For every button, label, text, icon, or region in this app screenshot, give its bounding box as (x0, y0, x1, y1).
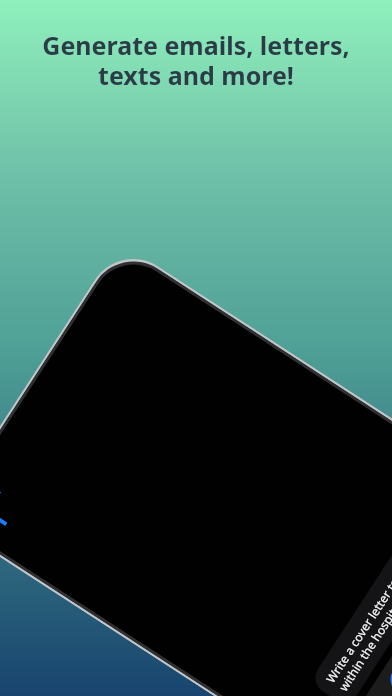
staticText: Generate emails, letters, texts and more… (42, 28, 350, 93)
button[interactable]: Write a cover letter to the employer wit… (322, 491, 392, 694)
button[interactable]: Audio message (384, 657, 392, 696)
staticText: Write a cover letter to the employer wit… (322, 491, 392, 694)
button[interactable]: Apple Cash (361, 692, 392, 696)
